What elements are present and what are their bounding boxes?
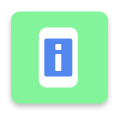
button[interactable]: Info bbox=[11, 11, 108, 103]
